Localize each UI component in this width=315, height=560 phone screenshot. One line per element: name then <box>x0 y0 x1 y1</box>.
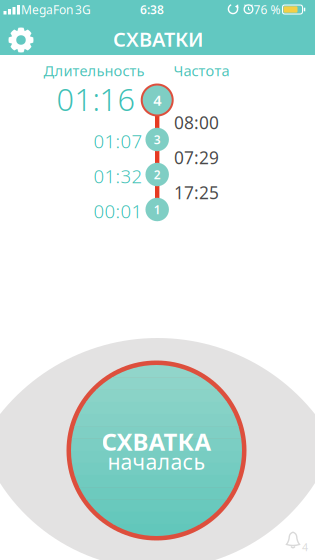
staticText: 01:32 <box>93 164 142 188</box>
staticText: 01:07 <box>93 129 142 153</box>
staticText: 07:29 <box>174 146 219 169</box>
staticText: 3G <box>75 1 91 17</box>
button[interactable]: Настройки <box>3 22 39 58</box>
staticText: 4 <box>153 90 161 110</box>
button[interactable]: Будильники <box>283 530 309 552</box>
staticText: 08:00 <box>174 111 219 134</box>
staticText: 2 <box>154 166 161 182</box>
staticText: началась <box>107 447 205 476</box>
staticText: 76 % <box>253 1 280 17</box>
staticText: 17:25 <box>174 181 219 204</box>
staticText: 01:16 <box>56 79 135 119</box>
staticText: Частота <box>173 61 229 80</box>
staticText: Длительность <box>43 61 144 80</box>
staticText: 4 <box>302 540 308 554</box>
staticText: 1 <box>154 201 161 217</box>
button[interactable]: СХВАТКА <box>66 360 246 540</box>
staticText: 3 <box>154 131 161 147</box>
staticText: СХВАТКА <box>101 425 211 457</box>
staticText: 6:38 <box>140 1 164 17</box>
staticText: MegaFon <box>21 1 73 17</box>
staticText: 00:01 <box>93 199 142 223</box>
staticText: СХВАТКИ <box>113 26 204 52</box>
